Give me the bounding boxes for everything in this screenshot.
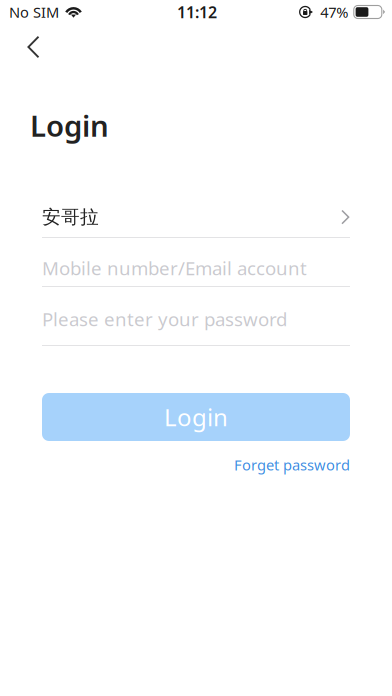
staticText: 安哥拉 <box>42 205 99 228</box>
staticText: Forget password <box>234 455 350 474</box>
button[interactable]: Back <box>0 30 74 64</box>
button[interactable]: Forget password <box>234 455 350 474</box>
staticText: Login <box>164 401 228 433</box>
staticText: Login <box>30 106 109 145</box>
staticText: 47% <box>320 2 348 22</box>
staticText: 11:12 <box>177 1 217 23</box>
button[interactable]: 安哥拉 <box>42 205 350 238</box>
staticText: Mobile number/Email account <box>42 256 307 280</box>
staticText: Please enter your password <box>42 307 287 331</box>
staticText: No SIM <box>9 2 59 22</box>
button[interactable]: Login <box>42 393 350 441</box>
